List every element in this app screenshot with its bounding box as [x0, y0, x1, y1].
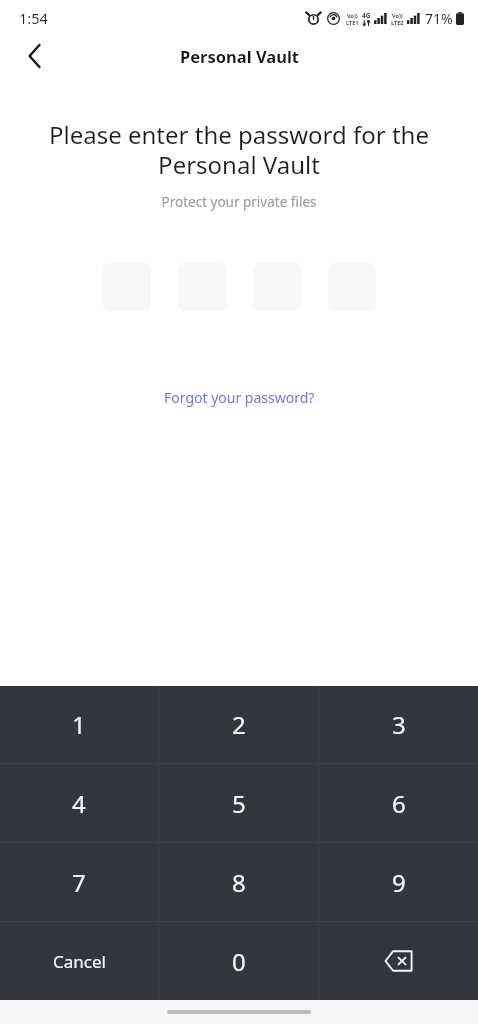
- button[interactable]: 2: [159, 686, 318, 763]
- staticText: Please enter the password for the Person…: [22, 118, 456, 181]
- button[interactable]: 8: [159, 843, 318, 921]
- staticText: 1: [72, 708, 86, 741]
- button[interactable]: 6: [319, 764, 478, 842]
- button[interactable]: 1: [0, 686, 158, 763]
- button[interactable]: 7: [0, 843, 158, 921]
- staticText: Cancel: [53, 950, 106, 973]
- staticText: 2: [232, 708, 246, 741]
- staticText: 7: [72, 866, 86, 899]
- button[interactable]: Backspace: [319, 922, 478, 1000]
- button[interactable]: Forgot your password?: [154, 384, 325, 411]
- staticText: 0: [232, 945, 246, 978]
- staticText: 4G: [362, 11, 371, 20]
- staticText: 4: [72, 787, 86, 820]
- button[interactable]: 0: [159, 922, 318, 1000]
- button[interactable]: Cancel: [0, 922, 158, 1000]
- button[interactable]: 4: [0, 764, 158, 842]
- staticText: Protect your private files: [0, 193, 478, 211]
- staticText: 8: [232, 866, 246, 899]
- staticText: LTE2: [391, 19, 404, 26]
- button[interactable]: Back: [14, 36, 54, 76]
- staticText: 3: [392, 708, 406, 741]
- staticText: Forgot your password?: [164, 388, 315, 407]
- button[interactable]: 3: [319, 686, 478, 763]
- staticText: 5: [232, 787, 246, 820]
- button[interactable]: 9: [319, 843, 478, 921]
- staticText: LTE1: [346, 19, 359, 26]
- button[interactable]: 5: [159, 764, 318, 842]
- staticText: 6: [392, 787, 406, 820]
- staticText: Vo)): [347, 12, 358, 19]
- staticText: Vo)): [392, 12, 403, 19]
- staticText: Personal Vault: [180, 45, 299, 67]
- staticText: 9: [392, 866, 406, 899]
- staticText: 71%: [425, 9, 453, 28]
- staticText: 1:54: [19, 8, 48, 28]
